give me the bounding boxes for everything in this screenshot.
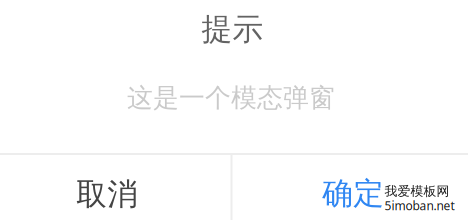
button[interactable]: 取消 bbox=[0, 162, 214, 220]
staticText: 提示 bbox=[201, 10, 263, 48]
staticText: 确定 bbox=[322, 175, 384, 212]
staticText: 这是一个模态弹窗 bbox=[127, 82, 335, 114]
staticText: 我爱模板网 bbox=[384, 183, 449, 199]
staticText: 取消 bbox=[76, 175, 138, 213]
staticText: 5imoban.net bbox=[384, 197, 454, 214]
button[interactable]: 确定 bbox=[236, 161, 468, 220]
